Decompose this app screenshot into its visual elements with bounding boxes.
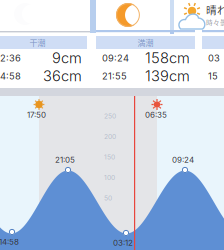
staticText: 03 (208, 52, 220, 64)
staticText: 50 (104, 194, 112, 202)
staticText: 21:05 (55, 155, 75, 165)
staticText: 06:35 (145, 110, 167, 120)
staticText: 09:24 (102, 52, 129, 64)
staticText: 時々曇り (206, 17, 224, 27)
staticText: 02:36 (0, 52, 21, 64)
staticText: 09:24 (172, 155, 194, 165)
staticText: 9cm (52, 49, 82, 67)
staticText: 15 (208, 70, 218, 82)
button[interactable] (202, 36, 224, 85)
staticText: 干潮 (29, 37, 45, 48)
staticText: 晴れ (206, 2, 224, 17)
staticText: 36cm (43, 67, 82, 85)
staticText: 満潮 (137, 37, 153, 48)
staticText: 200 (104, 132, 116, 141)
staticText: 04:58 (0, 70, 21, 82)
staticText: 14:58 (0, 237, 19, 247)
staticText: 17:50 (27, 110, 46, 120)
button[interactable]: 満潮 (96, 36, 195, 85)
button[interactable]: 干潮 (0, 36, 87, 85)
staticText: 21:55 (102, 70, 127, 82)
staticText: 03:12 (113, 238, 133, 248)
staticText: 158cm (145, 49, 190, 67)
staticText: 150 (104, 153, 115, 161)
staticText: 250 (104, 112, 116, 120)
staticText: 139cm (145, 67, 190, 85)
staticText: 100 (104, 173, 115, 182)
